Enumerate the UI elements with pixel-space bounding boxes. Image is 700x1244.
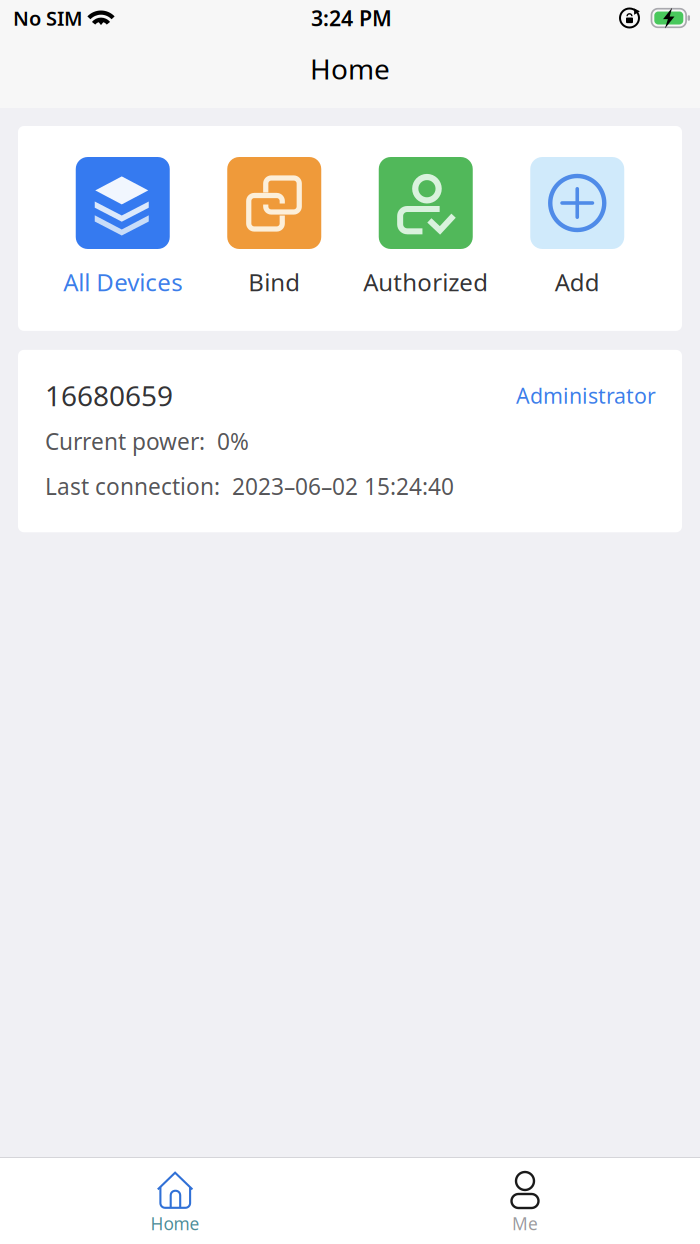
staticText: Current power: 0% — [45, 426, 249, 456]
staticText: Home — [150, 1212, 199, 1235]
button[interactable]: 16680659 — [18, 350, 682, 532]
button[interactable]: Home — [0, 1157, 350, 1244]
button[interactable]: Add — [501, 157, 653, 298]
button[interactable]: All Devices — [47, 157, 198, 298]
button[interactable]: Authorized — [350, 157, 501, 298]
staticText: Add — [555, 266, 600, 298]
staticText: 16680659 — [45, 377, 173, 414]
staticText: Authorized — [363, 266, 488, 298]
button[interactable]: Me — [350, 1157, 700, 1244]
staticText: No SIM — [13, 5, 83, 31]
staticText: Administrator — [516, 381, 656, 410]
staticText: Last connection: 2023–06–02 15:24:40 — [45, 471, 454, 501]
staticText: 3:24 PM — [311, 4, 392, 32]
staticText: All Devices — [63, 266, 182, 298]
staticText: Home — [310, 50, 390, 87]
staticText: Bind — [248, 266, 300, 298]
staticText: Me — [512, 1212, 538, 1235]
button[interactable]: Bind — [198, 157, 350, 298]
